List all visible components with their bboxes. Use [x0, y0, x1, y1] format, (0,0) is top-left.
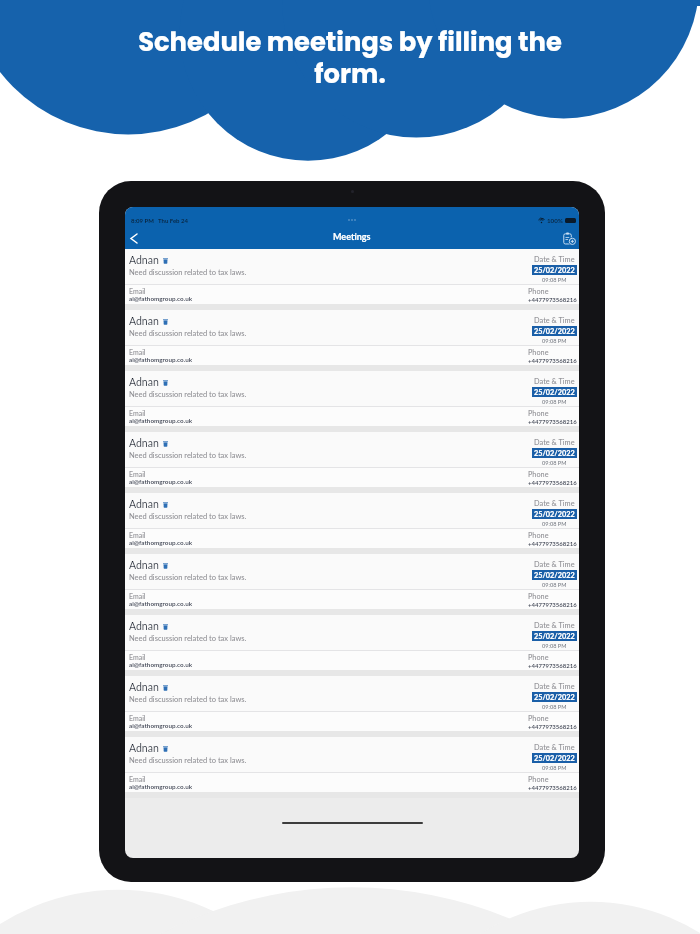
button[interactable]: Adnan [125, 615, 579, 676]
staticText: 09:08 PM [542, 459, 567, 466]
staticText: ai@fathomgroup.co.uk [129, 783, 193, 791]
staticText: 09:08 PM [542, 276, 567, 283]
button[interactable]: Adnan [125, 737, 579, 798]
staticText: Date & Time [534, 499, 575, 508]
staticText: Need discussion related to tax laws. [129, 756, 247, 765]
staticText: 09:08 PM [542, 703, 567, 710]
staticText: Date & Time [534, 316, 575, 325]
staticText: Phone [528, 775, 549, 784]
staticText: Email [129, 714, 146, 722]
button[interactable]: Back [126, 229, 142, 248]
staticText: Need discussion related to tax laws. [129, 329, 247, 338]
staticText: ai@fathomgroup.co.uk [129, 600, 193, 608]
staticText: 25/02/2022 [534, 327, 575, 336]
staticText: Need discussion related to tax laws. [129, 390, 247, 399]
staticText: ai@fathomgroup.co.uk [129, 661, 193, 669]
staticText: +4477973568216 [528, 784, 577, 791]
staticText: Need discussion related to tax laws. [129, 268, 247, 277]
staticText: ai@fathomgroup.co.uk [129, 478, 193, 486]
staticText: 09:08 PM [542, 398, 567, 405]
button[interactable]: Adnan [125, 493, 579, 554]
staticText: ai@fathomgroup.co.uk [129, 356, 193, 364]
staticText: ai@fathomgroup.co.uk [129, 539, 193, 547]
staticText: 09:08 PM [542, 337, 567, 344]
staticText: Email [129, 775, 146, 783]
button[interactable]: Add meeting [560, 229, 578, 248]
staticText: Phone [528, 470, 549, 479]
staticText: +4477973568216 [528, 296, 577, 303]
staticText: 09:08 PM [542, 642, 567, 649]
staticText: Date & Time [534, 621, 575, 630]
staticText: 09:08 PM [542, 520, 567, 527]
staticText: Adnan [129, 437, 159, 450]
staticText: Adnan [129, 254, 159, 267]
staticText: Email [129, 348, 146, 356]
staticText: 8:09 PM Thu Feb 24 [131, 217, 188, 224]
staticText: +4477973568216 [528, 601, 577, 608]
staticText: Adnan [129, 559, 159, 572]
staticText: Email [129, 470, 146, 478]
button[interactable]: Adnan [125, 554, 579, 615]
staticText: Email [129, 531, 146, 539]
staticText: +4477973568216 [528, 662, 577, 669]
staticText: 25/02/2022 [534, 388, 575, 397]
staticText: Email [129, 592, 146, 600]
staticText: +4477973568216 [528, 418, 577, 425]
staticText: ai@fathomgroup.co.uk [129, 722, 193, 730]
staticText: Phone [528, 653, 549, 662]
staticText: Email [129, 653, 146, 661]
staticText: Adnan [129, 376, 159, 389]
staticText: Need discussion related to tax laws. [129, 451, 247, 460]
staticText: Date & Time [534, 255, 575, 264]
staticText: Email [129, 287, 146, 295]
staticText: Need discussion related to tax laws. [129, 695, 247, 704]
staticText: Need discussion related to tax laws. [129, 634, 247, 643]
staticText: Date & Time [534, 560, 575, 569]
staticText: Need discussion related to tax laws. [129, 573, 247, 582]
staticText: Phone [528, 531, 549, 540]
staticText: 09:08 PM [542, 581, 567, 588]
button[interactable]: Adnan [125, 371, 579, 432]
staticText: +4477973568216 [528, 479, 577, 486]
staticText: Phone [528, 714, 549, 723]
staticText: Adnan [129, 315, 159, 328]
staticText: 09:08 PM [542, 764, 567, 771]
staticText: Need discussion related to tax laws. [129, 512, 247, 521]
staticText: 25/02/2022 [534, 693, 575, 702]
staticText: Schedule meetings by filling the form. [0, 24, 700, 92]
staticText: Meetings [333, 231, 371, 242]
staticText: Date & Time [534, 438, 575, 447]
staticText: Adnan [129, 681, 159, 694]
staticText: Date & Time [534, 682, 575, 691]
staticText: Phone [528, 348, 549, 357]
staticText: Phone [528, 592, 549, 601]
staticText: +4477973568216 [528, 540, 577, 547]
staticText: Phone [528, 287, 549, 296]
staticText: +4477973568216 [528, 357, 577, 364]
button[interactable]: Adnan [125, 432, 579, 493]
staticText: Phone [528, 409, 549, 418]
staticText: Date & Time [534, 743, 575, 752]
staticText: Date & Time [534, 377, 575, 386]
staticText: Adnan [129, 742, 159, 755]
staticText: 25/02/2022 [534, 449, 575, 458]
staticText: 25/02/2022 [534, 632, 575, 641]
staticText: Adnan [129, 498, 159, 511]
staticText: 25/02/2022 [534, 266, 575, 275]
staticText: 100% [547, 217, 563, 224]
staticText: Email [129, 409, 146, 417]
button[interactable]: Adnan [125, 676, 579, 737]
staticText: 25/02/2022 [534, 510, 575, 519]
staticText: 25/02/2022 [534, 571, 575, 580]
button[interactable]: Adnan [125, 249, 579, 310]
button[interactable]: Adnan [125, 310, 579, 371]
staticText: ai@fathomgroup.co.uk [129, 295, 193, 303]
staticText: 25/02/2022 [534, 754, 575, 763]
staticText: ai@fathomgroup.co.uk [129, 417, 193, 425]
staticText: Adnan [129, 620, 159, 633]
staticText: +4477973568216 [528, 723, 577, 730]
